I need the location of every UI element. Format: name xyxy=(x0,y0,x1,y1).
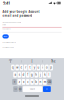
button[interactable]: space xyxy=(23,86,42,92)
button[interactable]: j xyxy=(39,72,42,78)
staticText: Create account xyxy=(2,46,13,48)
button[interactable]: n xyxy=(39,79,42,85)
button[interactable]: ⌫ xyxy=(47,79,52,85)
staticText: Forgot password? xyxy=(2,42,16,43)
staticText: g xyxy=(31,73,33,76)
staticText: n xyxy=(39,80,41,84)
button[interactable]: u xyxy=(37,65,40,70)
staticText: o xyxy=(46,66,48,69)
button[interactable]: v xyxy=(30,79,34,85)
button[interactable]: I xyxy=(21,58,43,64)
button[interactable]: go xyxy=(43,86,51,92)
staticText: r xyxy=(25,66,26,69)
staticText: m xyxy=(44,80,46,84)
button[interactable]: o xyxy=(45,65,49,70)
staticText: ⌫ xyxy=(47,80,51,83)
staticText: z xyxy=(19,80,20,84)
button[interactable]: 123 xyxy=(13,86,18,92)
button[interactable]: “I” xyxy=(0,58,21,64)
staticText: 9:41 xyxy=(3,0,10,6)
staticText: q xyxy=(12,66,14,69)
button[interactable]: f xyxy=(26,72,29,78)
staticText: ☺ xyxy=(19,88,22,91)
button[interactable]: Create account xyxy=(2,46,13,48)
staticText: ⇧ xyxy=(13,80,15,83)
staticText: f xyxy=(27,73,28,76)
staticText: e xyxy=(20,66,22,69)
staticText: w xyxy=(16,66,18,69)
button[interactable]: k xyxy=(43,72,46,78)
staticText: h xyxy=(35,73,37,76)
staticText: The xyxy=(51,60,56,63)
staticText: j xyxy=(40,73,41,76)
button[interactable]: a xyxy=(13,72,17,78)
button[interactable]: d xyxy=(22,72,25,78)
button[interactable]: r xyxy=(24,65,27,70)
button[interactable]: g xyxy=(30,72,34,78)
button[interactable]: h xyxy=(34,72,38,78)
button[interactable]: m xyxy=(43,79,46,85)
staticText: Add your Google Account xyxy=(2,10,39,13)
staticText: email and password xyxy=(2,14,32,17)
staticText: s xyxy=(19,73,20,76)
staticText: l xyxy=(48,73,49,76)
staticText: u xyxy=(37,66,39,69)
button[interactable]: Forgot password? xyxy=(2,42,16,43)
button[interactable]: x xyxy=(22,79,25,85)
staticText: x xyxy=(23,80,24,84)
staticText: Password xyxy=(2,28,10,30)
staticText: k xyxy=(44,73,45,76)
button[interactable]: l xyxy=(47,72,51,78)
staticText: y xyxy=(34,66,35,69)
staticText: i xyxy=(42,66,43,69)
button[interactable]: t xyxy=(28,65,32,70)
staticText: d xyxy=(22,73,24,76)
staticText: p xyxy=(50,66,52,69)
button[interactable]: Next xyxy=(2,34,9,39)
button[interactable]: w xyxy=(15,65,19,70)
staticText: c xyxy=(27,80,28,84)
staticText: 123 xyxy=(14,88,17,90)
staticText: t xyxy=(29,66,30,69)
button[interactable]: z xyxy=(17,79,21,85)
button[interactable]: b xyxy=(34,79,38,85)
button[interactable]: ⇧ xyxy=(12,79,17,85)
button[interactable]: p xyxy=(49,65,53,70)
button[interactable]: ☺ xyxy=(18,86,22,92)
staticText: Already have an account? xyxy=(2,22,21,23)
staticText: Email xyxy=(2,24,5,26)
button[interactable]: q xyxy=(11,65,15,70)
staticText: Next xyxy=(4,36,8,37)
button[interactable]: y xyxy=(32,65,36,70)
button[interactable]: i xyxy=(41,65,44,70)
button[interactable]: s xyxy=(17,72,21,78)
staticText: go xyxy=(46,88,48,90)
staticText: a xyxy=(14,73,15,76)
staticText: “I” xyxy=(9,60,12,63)
staticText: b xyxy=(35,80,37,84)
button[interactable]: e xyxy=(20,65,23,70)
button[interactable]: The xyxy=(43,58,64,64)
button[interactable]: c xyxy=(26,79,29,85)
staticText: space xyxy=(30,88,35,90)
